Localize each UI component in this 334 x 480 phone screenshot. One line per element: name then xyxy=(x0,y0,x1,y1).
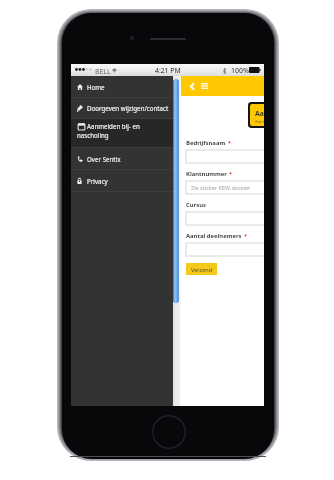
button[interactable]: Menu xyxy=(197,76,212,96)
button[interactable] xyxy=(186,243,264,256)
staticText: Zie sticker KEW dossier xyxy=(191,184,251,191)
staticText: Bedrijfsnaam xyxy=(186,139,226,147)
staticText: BELL xyxy=(95,67,111,76)
button[interactable] xyxy=(186,212,264,225)
button[interactable]: Home xyxy=(71,76,173,97)
staticText: Aanmelden bij- en xyxy=(87,122,140,130)
button[interactable] xyxy=(186,150,264,163)
button[interactable]: Doorgeven wijzigen/contact xyxy=(71,98,173,118)
staticText: Klantnummer xyxy=(186,170,227,178)
staticText: Aanmelden xyxy=(255,119,264,125)
staticText: 4:21 PM xyxy=(155,66,181,75)
staticText: Privacy xyxy=(87,177,108,185)
staticText: Home xyxy=(87,83,105,91)
button[interactable]: Zie sticker KEW dossier xyxy=(186,181,264,194)
staticText: * xyxy=(228,139,231,146)
button[interactable]: Back xyxy=(181,76,197,96)
button[interactable]: Aanmelden xyxy=(250,104,264,126)
staticText: * xyxy=(244,232,247,239)
button[interactable]: Over Sentix xyxy=(71,148,173,169)
staticText: 100% xyxy=(231,66,249,76)
staticText: Verzend xyxy=(191,266,213,273)
staticText: Aanmelden xyxy=(255,109,264,118)
staticText: Cursus xyxy=(186,201,206,209)
button[interactable]: Verzend xyxy=(186,263,217,275)
staticText: Doorgeven wijzigen/contact xyxy=(87,104,169,112)
staticText: Over Sentix xyxy=(87,155,121,163)
button[interactable]: Aanmelden bij- en xyxy=(71,119,173,147)
staticText: Aantal deelnemers xyxy=(186,232,242,240)
button[interactable]: Privacy xyxy=(71,170,173,191)
staticText: * xyxy=(229,170,232,177)
staticText: nascholing xyxy=(77,131,109,139)
